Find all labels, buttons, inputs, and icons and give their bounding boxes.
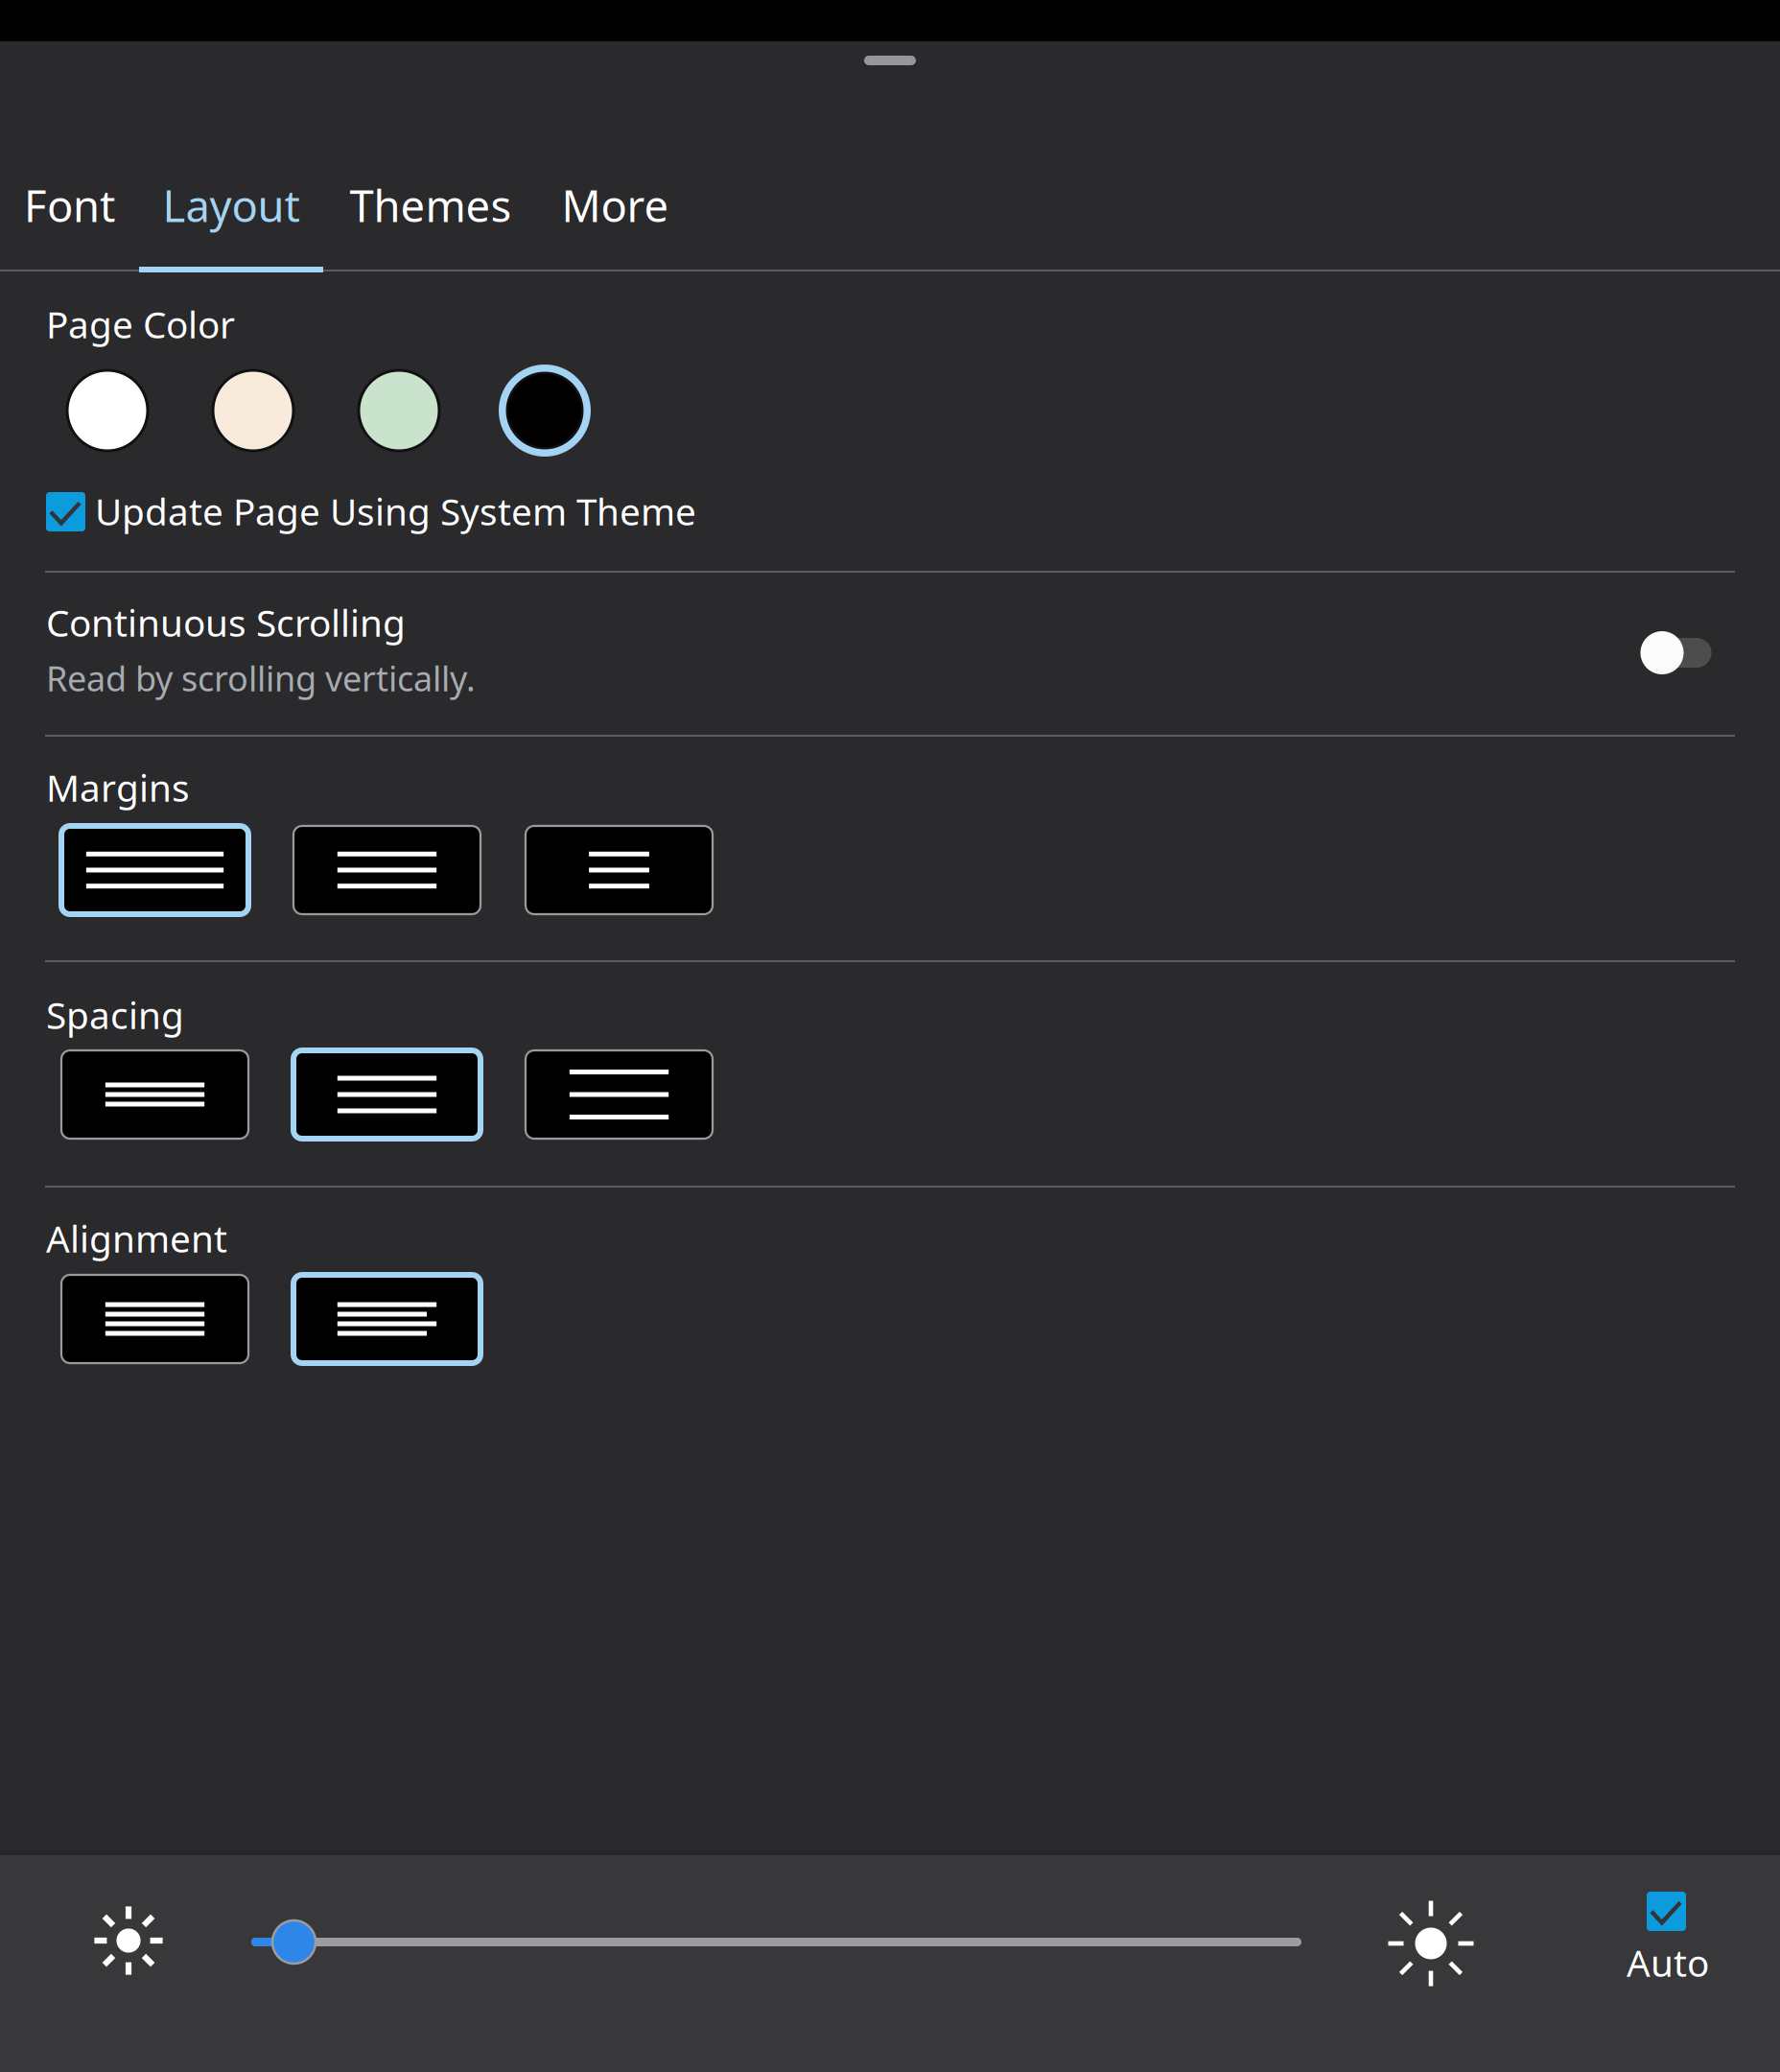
staticText: Margins xyxy=(46,763,190,812)
staticText: More xyxy=(562,176,669,234)
button[interactable]: Continuous Scrolling xyxy=(45,583,1735,725)
button[interactable]: Themes xyxy=(323,41,538,272)
button[interactable]: More xyxy=(538,41,692,272)
button[interactable]: Spacing option xyxy=(526,1050,713,1139)
staticText: Auto xyxy=(1627,1938,1709,1987)
staticText: Update Page Using System Theme xyxy=(95,486,696,536)
staticText: Alignment xyxy=(46,1213,227,1263)
button[interactable]: Page colour option xyxy=(353,365,445,457)
button[interactable]: Update Page Using System Theme xyxy=(46,485,717,545)
staticText: Layout xyxy=(163,176,300,234)
staticText: Font xyxy=(24,176,115,234)
button[interactable]: Page colour option xyxy=(61,365,153,457)
button[interactable]: Page colour option xyxy=(207,365,299,457)
button[interactable]: Lower brightness xyxy=(76,1878,181,2003)
button[interactable]: Layout xyxy=(139,41,323,272)
staticText: Page Color xyxy=(46,299,235,348)
staticText: Spacing xyxy=(46,990,184,1039)
button[interactable]: Spacing option xyxy=(293,1050,480,1139)
button[interactable]: Alignment option xyxy=(61,1275,248,1363)
button[interactable]: Page colour option xyxy=(499,365,591,457)
button[interactable]: Margin option xyxy=(526,826,713,914)
button[interactable]: Margin option xyxy=(61,826,248,914)
button[interactable]: Auto xyxy=(1601,1855,1733,2028)
button[interactable]: Spacing option xyxy=(61,1050,248,1139)
button[interactable]: Alignment option xyxy=(293,1275,480,1363)
staticText: Continuous Scrolling xyxy=(46,598,406,647)
button[interactable]: Font xyxy=(0,41,139,272)
button[interactable]: Raise brightness xyxy=(1373,1881,1488,2006)
button[interactable]: Margin option xyxy=(293,826,480,914)
staticText: Read by scrolling vertically. xyxy=(46,655,476,701)
staticText: Themes xyxy=(350,176,512,234)
